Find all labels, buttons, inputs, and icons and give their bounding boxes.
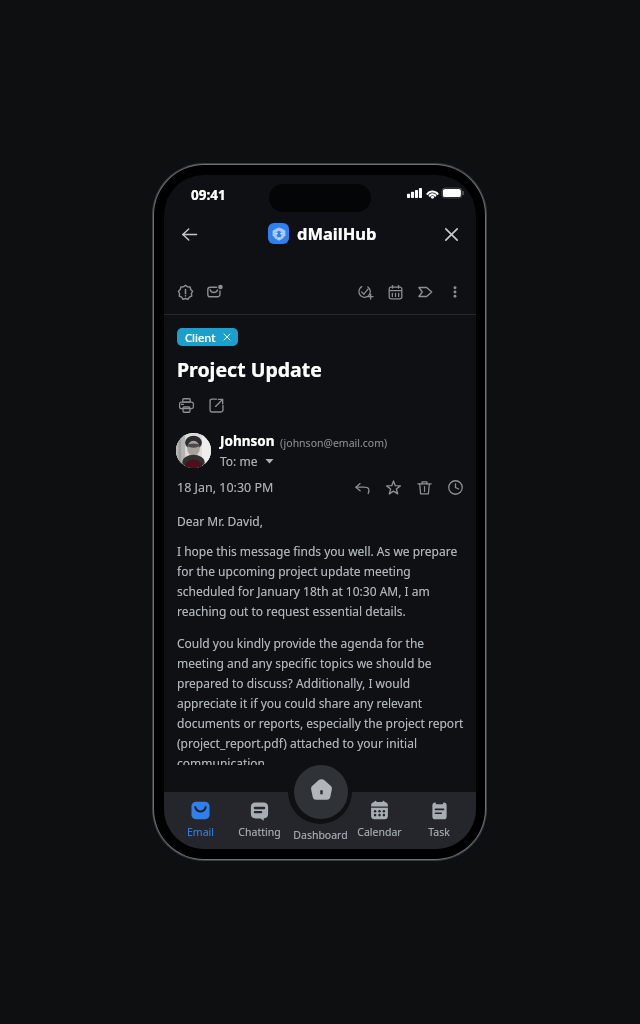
button[interactable]: Reply <box>347 472 377 502</box>
staticText: 18 Jan, 10:30 PM <box>177 479 274 496</box>
staticText: dMailHub <box>297 222 377 244</box>
button[interactable]: Email <box>171 792 230 849</box>
button[interactable]: Chatting <box>230 792 289 849</box>
button[interactable]: Star <box>378 472 408 502</box>
staticText: Client <box>185 330 216 345</box>
staticText: Johnson <box>220 432 275 450</box>
button[interactable]: Delete <box>409 472 439 502</box>
staticText: (johnson@email.com) <box>280 436 388 450</box>
button[interactable]: Client <box>177 328 238 346</box>
button[interactable]: Task <box>409 792 469 849</box>
button[interactable]: Open in new <box>201 390 231 420</box>
staticText: To: me <box>220 453 258 468</box>
staticText: Calendar <box>357 825 402 839</box>
button[interactable]: Calendar <box>349 792 409 849</box>
staticText: Email <box>187 825 214 839</box>
staticText: Could you kindly provide the agenda for … <box>177 635 465 765</box>
button[interactable]: Mark unread <box>200 277 230 307</box>
button[interactable]: Calendar <box>380 277 410 307</box>
button[interactable]: Close <box>434 217 468 251</box>
staticText: Task <box>428 825 450 839</box>
staticText: Project Update <box>177 356 322 383</box>
staticText: Dear Mr. David, <box>177 513 263 529</box>
button[interactable]: Print <box>171 390 201 420</box>
button[interactable]: Back <box>172 217 206 251</box>
button[interactable]: Report spam <box>170 277 200 307</box>
staticText: Chatting <box>238 825 281 839</box>
staticText: 09:41 <box>191 186 226 204</box>
button[interactable]: Snooze <box>440 472 470 502</box>
button[interactable]: Add task <box>350 277 380 307</box>
button[interactable]: Label <box>410 277 440 307</box>
button[interactable]: Dashboard <box>294 765 348 819</box>
button[interactable]: More options <box>440 277 470 307</box>
staticText: I hope this message finds you well. As w… <box>177 543 465 619</box>
staticText: Dashboard <box>293 828 348 842</box>
